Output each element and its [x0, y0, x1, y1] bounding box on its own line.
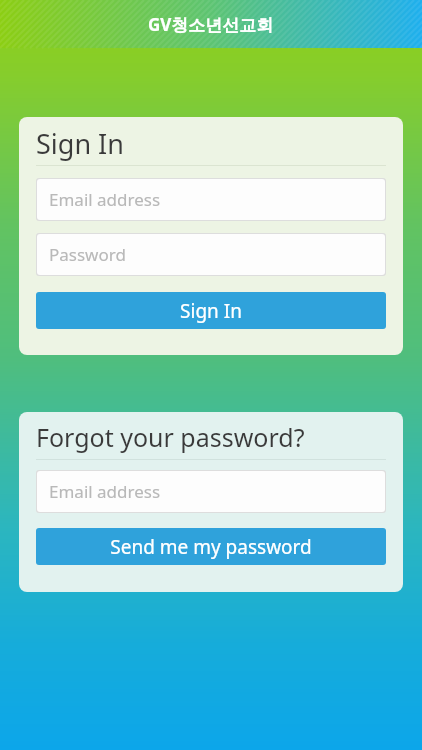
staticText: Send me my password [110, 534, 312, 560]
button[interactable]: Email address [37, 471, 385, 512]
button[interactable]: GV청소년선교회 [0, 0, 422, 48]
button[interactable]: Sign In [36, 292, 386, 329]
staticText: Sign In [180, 298, 242, 324]
staticText: GV청소년선교회 [148, 13, 274, 36]
staticText: Forgot your password? [36, 420, 305, 454]
staticText: Email address [49, 480, 161, 503]
button[interactable]: Send me my password [36, 528, 386, 565]
button[interactable]: Email address [37, 179, 385, 220]
staticText: Email address [49, 188, 161, 211]
staticText: Password [49, 243, 126, 266]
button[interactable]: Password [37, 234, 385, 275]
staticText: Sign In [36, 125, 124, 162]
